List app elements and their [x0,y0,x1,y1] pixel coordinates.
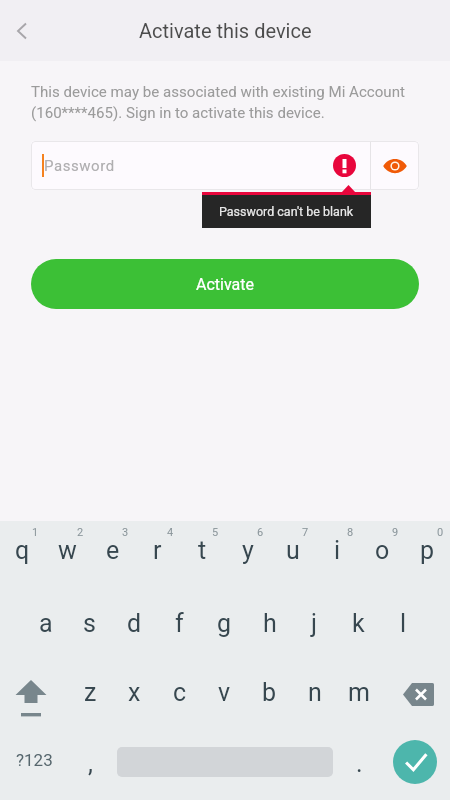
button[interactable]: r [135,521,180,590]
staticText: m [348,678,370,707]
button[interactable]: Symbols [1,726,67,795]
button[interactable]: l [381,591,426,660]
button[interactable]: u [270,521,315,590]
staticText: 2 [77,526,84,539]
button[interactable]: k [336,591,381,660]
button[interactable]: . [337,726,381,795]
button[interactable]: c [157,660,202,729]
staticText: z [84,678,97,707]
staticText: u [286,536,300,565]
staticText: p [420,536,435,565]
staticText: y [242,536,254,565]
staticText: 8 [347,526,354,539]
button[interactable]: t [180,521,225,590]
button[interactable]: Activate [31,259,419,309]
staticText: 7 [302,526,309,539]
staticText: j [311,609,317,638]
button[interactable]: Enter [384,726,446,795]
staticText: Password [44,157,115,175]
staticText: d [127,609,142,638]
staticText: b [262,678,277,707]
button[interactable]: Space [117,726,333,795]
staticText: f [175,609,184,638]
staticText: c [173,678,187,707]
button[interactable]: Back [0,0,56,61]
staticText: h [263,609,277,638]
staticText: s [83,609,96,638]
button[interactable]: z [68,660,113,729]
button[interactable]: w [45,521,90,590]
staticText: ?123 [16,750,53,770]
staticText: 3 [122,526,129,539]
button[interactable]: s [67,591,112,660]
button[interactable]: q [0,521,45,590]
staticText: i [334,536,341,565]
button[interactable]: n [292,660,337,729]
button[interactable]: f [157,591,202,660]
staticText: 1 [32,526,39,539]
staticText: r [153,536,162,565]
button[interactable]: y [225,521,270,590]
button[interactable]: d [112,591,157,660]
button[interactable]: , [68,726,112,795]
staticText: Password can't be blank [219,204,354,219]
staticText: q [15,536,30,565]
staticText: k [352,609,365,638]
staticText: e [106,536,120,565]
button[interactable]: a [23,591,68,660]
button[interactable]: Backspace [388,660,448,729]
staticText: 5 [212,526,219,539]
button[interactable]: e [90,521,135,590]
staticText: w [58,536,77,565]
button[interactable]: p [405,521,450,590]
other: Error [333,154,356,177]
staticText: 0 [437,526,444,539]
staticText: 4 [167,526,174,539]
button[interactable]: Show password [371,141,419,190]
staticText: n [308,678,322,707]
button[interactable]: g [202,591,247,660]
staticText: o [375,536,390,565]
staticText: l [400,609,407,638]
button[interactable]: h [247,591,292,660]
button[interactable]: x [112,660,157,729]
button[interactable]: v [202,660,247,729]
staticText: v [218,678,231,707]
staticText: 6 [257,526,264,539]
button[interactable]: Shift [1,660,61,729]
button[interactable]: Password [31,141,370,190]
button[interactable]: j [291,591,336,660]
button[interactable]: o [360,521,405,590]
staticText: x [128,678,141,707]
staticText: t [198,536,207,565]
staticText: , [88,749,93,778]
staticText: 9 [392,526,399,539]
staticText: . [356,749,363,778]
staticText: g [217,609,232,638]
staticText: a [39,609,53,638]
button[interactable]: b [247,660,292,729]
button[interactable]: i [315,521,360,590]
button[interactable]: m [336,660,381,729]
staticText: Activate this device [139,19,312,42]
staticText: Activate [196,275,254,294]
staticText: This device may be associated with exist… [31,83,405,121]
